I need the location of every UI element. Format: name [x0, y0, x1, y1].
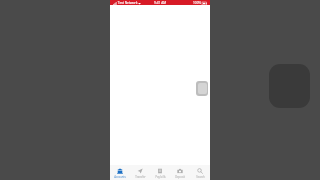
button[interactable]: Deposit: [170, 165, 190, 180]
button[interactable]: Transfer: [130, 165, 150, 180]
button[interactable]: Accounts: [110, 165, 130, 180]
staticText: Search: [196, 175, 205, 179]
staticText: Test Network: [117, 1, 138, 5]
button[interactable]: Search: [190, 165, 210, 180]
staticText: 9:41 AM: [154, 1, 167, 5]
staticText: 100%: [193, 1, 202, 5]
staticText: Accounts: [114, 175, 126, 179]
button[interactable]: Pay bills: [150, 165, 170, 180]
staticText: Transfer: [135, 175, 146, 179]
button[interactable]: Open panel: [196, 81, 208, 96]
staticText: Pay bills: [155, 175, 166, 179]
staticText: Deposit: [175, 175, 185, 179]
